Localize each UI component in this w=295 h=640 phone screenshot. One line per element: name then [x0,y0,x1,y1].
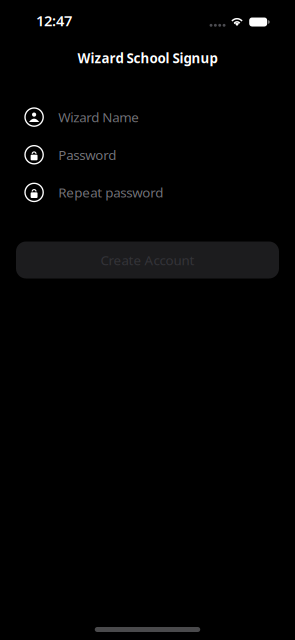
staticText: Password [58,146,116,164]
staticText: Wizard Name [58,108,139,126]
staticText: Repeat password [58,183,163,201]
button[interactable]: Create Account [16,241,279,278]
staticText: Wizard School Signup [77,49,217,67]
staticText: 12:47 [36,11,72,30]
staticText: Create Account [100,251,194,269]
